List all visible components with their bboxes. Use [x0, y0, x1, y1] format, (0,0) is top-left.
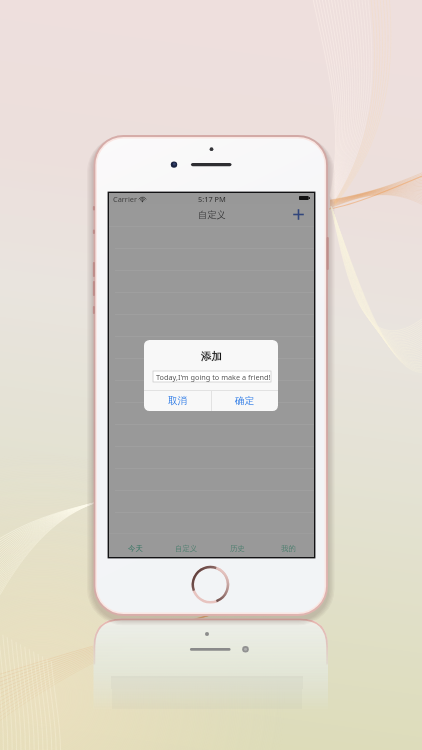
button[interactable]	[109, 359, 314, 381]
staticText: 我的	[281, 544, 296, 553]
button[interactable]: 历史	[212, 533, 263, 557]
staticText: 5:17 PM	[198, 194, 226, 204]
button[interactable]: Add	[288, 204, 314, 227]
staticText: 自定义	[175, 544, 198, 553]
button[interactable]: 我的	[263, 533, 314, 557]
button[interactable]	[109, 337, 314, 359]
button[interactable]	[109, 403, 314, 425]
staticText: 今天	[128, 544, 143, 553]
staticText: 取消	[168, 395, 188, 407]
button[interactable]: 确定	[211, 391, 278, 411]
staticText: 自定义	[198, 209, 226, 221]
button[interactable]: Today,I'm going to make a friend!	[153, 371, 271, 382]
button[interactable]: 今天	[109, 533, 161, 557]
button[interactable]: 取消	[144, 391, 211, 411]
button[interactable]	[109, 381, 314, 403]
button[interactable]	[109, 535, 314, 557]
staticText: 历史	[230, 544, 245, 553]
staticText: 添加	[201, 350, 222, 363]
staticText: Carrier	[113, 194, 138, 204]
button[interactable]: 自定义	[161, 533, 212, 557]
staticText: 确定	[235, 395, 255, 407]
staticText: Today,I'm going to make a friend!	[156, 372, 271, 382]
